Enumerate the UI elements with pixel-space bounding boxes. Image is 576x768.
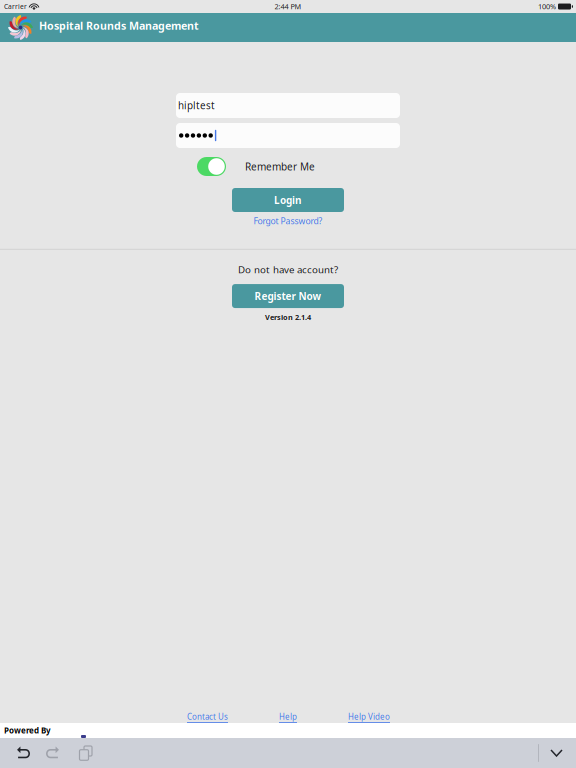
staticText: Help Video: [348, 711, 390, 722]
staticText: Carrier: [4, 2, 27, 11]
staticText: Register Now: [254, 289, 321, 303]
staticText: Do not have account?: [238, 263, 338, 276]
button[interactable]: Help: [279, 711, 297, 723]
staticText: 100%: [538, 1, 556, 11]
staticText: Version 2.1.4: [265, 312, 311, 322]
button[interactable]: Contact Us: [187, 711, 228, 723]
button[interactable]: Help Video: [348, 711, 390, 723]
staticText: Forgot Password?: [253, 215, 322, 227]
staticText: Remember Me: [245, 160, 315, 173]
staticText: Help: [279, 711, 297, 722]
button[interactable]: Paste: [78, 738, 109, 768]
button[interactable]: Remember Me: [197, 157, 226, 176]
button[interactable]: Register Now: [232, 284, 344, 308]
button[interactable]: Redo: [46, 738, 78, 768]
staticText: Contact Us: [187, 711, 228, 722]
button[interactable]: Login: [232, 188, 344, 212]
button[interactable]: Hide keyboard: [539, 738, 576, 768]
staticText: hipltest: [178, 99, 215, 112]
staticText: Powered By: [4, 725, 51, 736]
button[interactable]: Forgot Password?: [253, 215, 322, 227]
button[interactable]: Undo: [0, 738, 46, 768]
staticText: Login: [274, 193, 302, 207]
staticText: 2:44 PM: [274, 1, 301, 11]
staticText: Hospital Rounds Management: [39, 18, 199, 33]
button[interactable]: App logo: [0, 15, 33, 40]
